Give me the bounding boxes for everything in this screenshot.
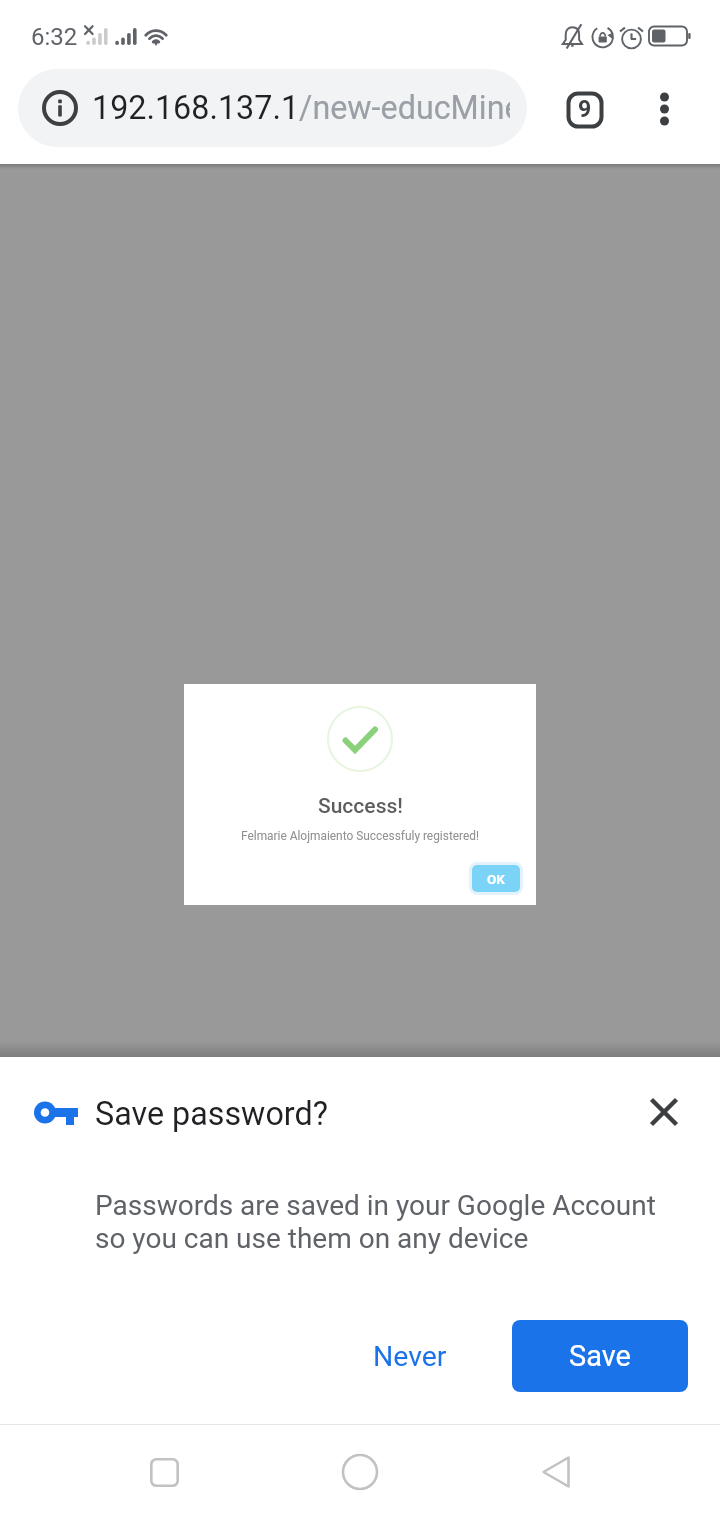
button[interactable]: More options (640, 85, 688, 133)
button[interactable]: Site information (18, 69, 527, 147)
button[interactable]: Site information (30, 78, 90, 138)
staticText: Passwords are saved in your Google Accou… (95, 1189, 656, 1254)
staticText: 9 (578, 96, 592, 123)
button[interactable]: Never (350, 1320, 470, 1392)
staticText: Save password? (95, 1095, 328, 1133)
staticText: Success! (318, 794, 403, 819)
staticText: 6:32 (31, 23, 78, 51)
button[interactable]: Close (638, 1086, 690, 1138)
staticText: Never (373, 1340, 447, 1373)
staticText: 192.168.137.1/new-educMinerva (92, 89, 510, 127)
staticText: Felmarie Alojmaiento Successfuly registe… (241, 829, 480, 843)
staticText: OK (487, 871, 505, 887)
button[interactable]: Tabs, 9 open (561, 86, 609, 134)
button[interactable]: Home (320, 1432, 400, 1512)
button[interactable]: Save (512, 1320, 688, 1392)
staticText: Save (569, 1339, 631, 1373)
button[interactable]: Back (516, 1432, 596, 1512)
button[interactable]: Recents (124, 1432, 204, 1512)
button[interactable]: OK (469, 862, 523, 895)
